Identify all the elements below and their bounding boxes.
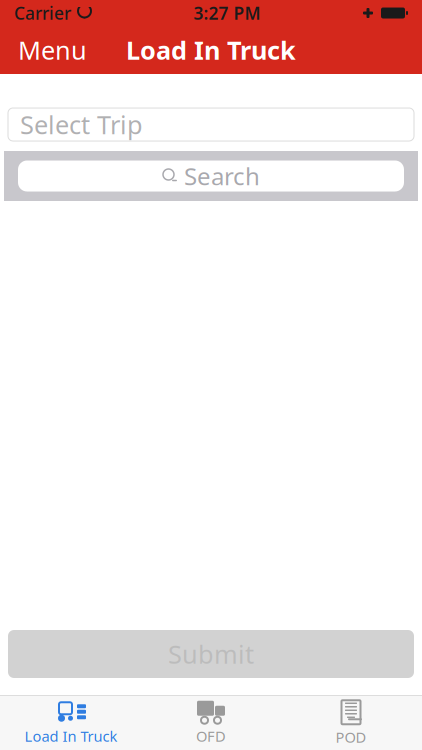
button[interactable]: OFD bbox=[141, 699, 281, 747]
staticText: Menu bbox=[18, 33, 87, 67]
staticText: OFD bbox=[196, 726, 226, 746]
button[interactable]: Select Trip bbox=[8, 108, 414, 141]
staticText: Submit bbox=[168, 637, 254, 671]
staticText: Carrier bbox=[14, 1, 71, 24]
staticText: Load In Truck bbox=[24, 726, 117, 746]
button[interactable]: POD bbox=[281, 699, 421, 747]
staticText: 3:27 PM bbox=[193, 1, 260, 24]
staticText: Select Trip bbox=[20, 108, 143, 141]
button[interactable]: Load In Truck bbox=[1, 699, 141, 747]
staticText: POD bbox=[335, 727, 366, 747]
button[interactable]: Search bbox=[4, 151, 418, 201]
staticText: Search bbox=[184, 160, 260, 192]
staticText: Load In Truck bbox=[126, 33, 296, 67]
button[interactable]: Menu bbox=[0, 26, 105, 74]
button[interactable]: Submit bbox=[8, 630, 414, 678]
